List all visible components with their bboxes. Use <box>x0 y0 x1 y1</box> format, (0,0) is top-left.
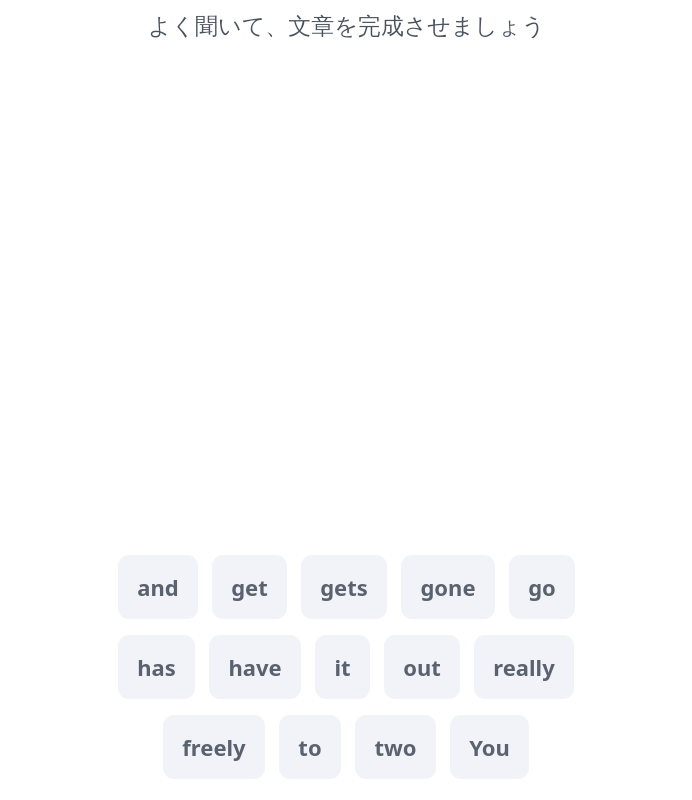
button[interactable]: two <box>355 715 436 779</box>
button[interactable]: freely <box>163 715 265 779</box>
staticText: よく聞いて、文章を完成させましょう <box>148 12 545 41</box>
button[interactable]: You <box>450 715 529 779</box>
staticText: get <box>231 572 268 602</box>
button[interactable]: gets <box>301 555 387 619</box>
staticText: really <box>493 652 555 682</box>
staticText: has <box>137 652 176 682</box>
button[interactable]: gone <box>401 555 495 619</box>
staticText: gone <box>420 572 476 602</box>
button[interactable]: to <box>279 715 341 779</box>
staticText: two <box>374 732 417 762</box>
button[interactable]: has <box>118 635 195 699</box>
button[interactable]: have <box>209 635 301 699</box>
button[interactable]: out <box>384 635 460 699</box>
staticText: it <box>334 652 351 682</box>
staticText: out <box>403 652 441 682</box>
button[interactable]: go <box>509 555 575 619</box>
button[interactable]: and <box>118 555 198 619</box>
staticText: go <box>528 572 556 602</box>
staticText: freely <box>182 732 246 762</box>
staticText: gets <box>320 572 368 602</box>
button[interactable]: it <box>315 635 370 699</box>
staticText: and <box>137 572 179 602</box>
staticText: have <box>228 652 282 682</box>
staticText: You <box>469 732 510 762</box>
button[interactable]: get <box>212 555 287 619</box>
button[interactable]: really <box>474 635 574 699</box>
staticText: to <box>298 732 322 762</box>
